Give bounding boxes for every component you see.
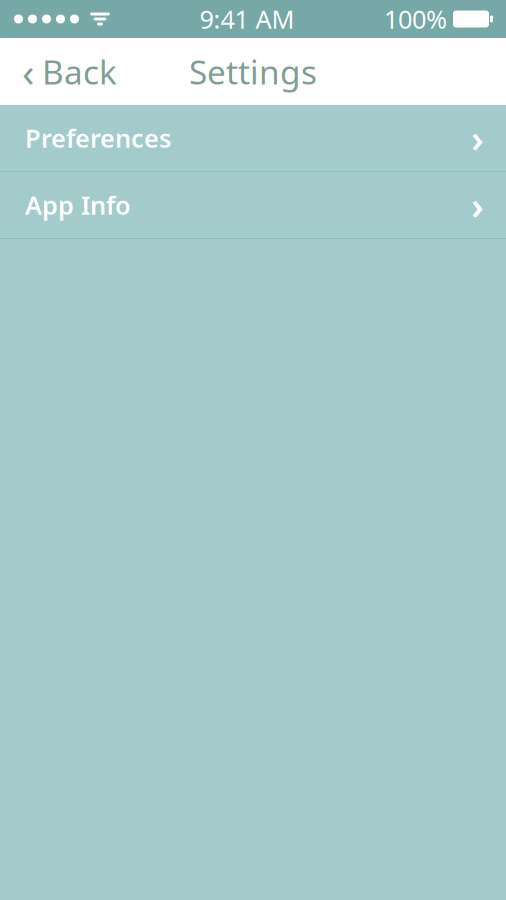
staticText: Preferences [25, 121, 171, 155]
button[interactable]: App Info [0, 172, 506, 238]
staticText: › [471, 113, 484, 163]
staticText: Back [42, 49, 117, 94]
button[interactable]: Preferences [0, 105, 506, 171]
staticText: App Info [25, 188, 131, 222]
staticText: ‹ [22, 45, 34, 98]
staticText: › [471, 180, 484, 230]
staticText: 100% [384, 2, 447, 36]
staticText: 9:41 AM [199, 2, 294, 36]
staticText: Settings [189, 49, 317, 94]
button[interactable]: ‹ [0, 38, 133, 105]
